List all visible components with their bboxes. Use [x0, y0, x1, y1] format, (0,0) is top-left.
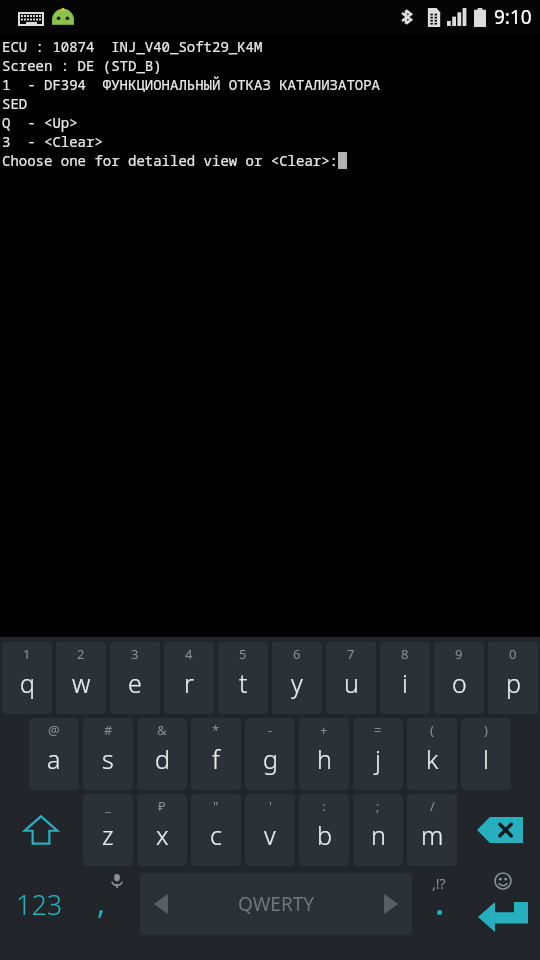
staticText: :	[322, 797, 326, 815]
staticText: '	[269, 797, 272, 815]
staticText: g	[263, 742, 278, 776]
button[interactable]: Backspace	[459, 792, 540, 868]
staticText: d	[155, 742, 170, 776]
button[interactable]: _	[83, 794, 133, 866]
button[interactable]: 7	[326, 642, 376, 714]
staticText: 5	[239, 645, 247, 663]
staticText: a	[47, 742, 61, 776]
staticText: v	[264, 818, 276, 852]
button[interactable]: Shift	[0, 792, 81, 868]
staticText: =	[374, 721, 382, 739]
staticText: ECU : 10874 INJ_V40_Soft29_K4M	[2, 37, 263, 56]
staticText: Screen : DE (STD_B)	[2, 56, 162, 75]
staticText: ,	[97, 882, 106, 923]
staticText: 4	[185, 645, 193, 663]
staticText: Q - <Up>	[2, 113, 78, 132]
button[interactable]: -	[245, 718, 295, 790]
staticText: x	[156, 818, 169, 852]
staticText: Choose one for detailed view or <Clear>:	[2, 151, 338, 170]
staticText: )	[484, 721, 488, 739]
staticText: u	[344, 666, 359, 700]
button[interactable]: 6	[272, 642, 322, 714]
staticText: k	[426, 742, 439, 776]
staticText: 1	[23, 645, 31, 663]
button[interactable]: 123	[0, 868, 78, 940]
staticText: "	[213, 797, 219, 815]
staticText: 0	[509, 645, 517, 663]
button[interactable]: '	[245, 794, 295, 866]
button[interactable]: 0	[488, 642, 538, 714]
staticText: 123	[16, 886, 63, 923]
staticText: f	[212, 742, 220, 776]
staticText: h	[317, 742, 332, 776]
staticText: 3	[131, 645, 139, 663]
button[interactable]: "	[191, 794, 241, 866]
staticText: b	[317, 818, 332, 852]
staticText: 1 - DF394 ФУНКЦИОНАЛЬНЫЙ ОТКАЗ КАТАЛИЗАТ…	[2, 75, 380, 94]
staticText: j	[375, 742, 381, 776]
button[interactable]: Enter and emoji	[466, 868, 540, 940]
staticText: n	[371, 818, 386, 852]
staticText: ;	[376, 797, 380, 815]
staticText: w	[72, 666, 91, 700]
staticText: i	[402, 666, 408, 700]
button[interactable]: /	[407, 794, 457, 866]
button[interactable]: @	[29, 718, 79, 790]
staticText: -	[268, 721, 273, 739]
staticText: QWERTY	[238, 891, 315, 917]
staticText: l	[483, 742, 489, 776]
button[interactable]: &	[137, 718, 187, 790]
staticText: *	[212, 721, 220, 739]
button[interactable]: ₽	[137, 794, 187, 866]
button[interactable]: =	[353, 718, 403, 790]
staticText: 9:10	[494, 4, 532, 30]
staticText: +	[320, 721, 328, 739]
button[interactable]: #	[83, 718, 133, 790]
button[interactable]: 9	[434, 642, 484, 714]
staticText: m	[421, 818, 444, 852]
button[interactable]: :	[299, 794, 349, 866]
button[interactable]: 2	[56, 642, 106, 714]
staticText: t	[239, 666, 248, 700]
staticText: 6	[293, 645, 301, 663]
button[interactable]: Comma and voice input	[78, 868, 140, 940]
button[interactable]: Period and symbols	[412, 868, 466, 940]
staticText: /	[430, 797, 435, 815]
button[interactable]: ;	[353, 794, 403, 866]
button[interactable]: 8	[380, 642, 430, 714]
staticText: r	[184, 666, 194, 700]
staticText: _	[105, 797, 111, 815]
button[interactable]: (	[407, 718, 457, 790]
button[interactable]: 1	[2, 642, 52, 714]
staticText: y	[291, 666, 303, 700]
button[interactable]: +	[299, 718, 349, 790]
staticText: c	[210, 818, 222, 852]
staticText: @	[48, 721, 60, 739]
staticText: s	[102, 742, 114, 776]
button[interactable]: Space, QWERTY layout	[140, 873, 412, 935]
staticText: ,!?	[432, 874, 446, 893]
staticText: 8	[401, 645, 409, 663]
staticText: SED	[2, 94, 28, 113]
staticText: 3 - <Clear>	[2, 132, 103, 151]
staticText: e	[128, 666, 142, 700]
staticText: 9	[455, 645, 463, 663]
staticText: &	[157, 721, 167, 739]
button[interactable]: *	[191, 718, 241, 790]
button[interactable]: 4	[164, 642, 214, 714]
staticText: o	[452, 666, 467, 700]
button[interactable]: 3	[110, 642, 160, 714]
staticText: (	[430, 721, 434, 739]
staticText: 7	[347, 645, 355, 663]
staticText: q	[20, 666, 35, 700]
staticText: 2	[77, 645, 85, 663]
staticText: p	[506, 666, 521, 700]
staticText: z	[102, 818, 114, 852]
staticText: ₽	[158, 797, 166, 815]
button[interactable]: )	[461, 718, 511, 790]
staticText: #	[104, 721, 113, 739]
button[interactable]: 5	[218, 642, 268, 714]
